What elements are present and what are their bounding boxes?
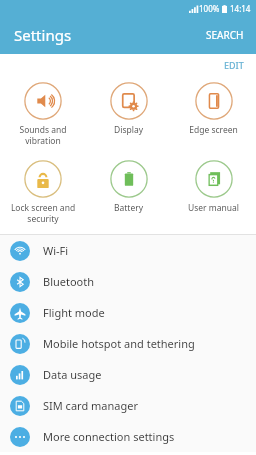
button[interactable]: Flight mode (0, 297, 256, 328)
staticText: Display (86, 124, 171, 136)
button[interactable]: Wi-Fi (0, 235, 256, 266)
staticText: 100% (199, 3, 220, 14)
staticText: Mobile hotspot and tethering (43, 336, 195, 351)
staticText: Settings (14, 25, 72, 45)
button[interactable]: Sounds and vibration (0, 80, 86, 148)
staticText: SEARCH (206, 28, 244, 42)
button[interactable]: Bluetooth (0, 266, 256, 297)
staticText: Edge screen (171, 124, 256, 136)
button[interactable]: SEARCH (194, 20, 256, 50)
staticText: More connection settings (43, 429, 175, 444)
staticText: Bluetooth (43, 274, 95, 289)
staticText: EDIT (224, 59, 244, 71)
button[interactable]: Mobile hotspot and tethering (0, 328, 256, 359)
button[interactable]: More connection settings (0, 421, 256, 452)
staticText: Lock screen and security (0, 202, 86, 224)
button[interactable]: Data usage (0, 359, 256, 390)
staticText: SIM card manager (43, 398, 138, 413)
button[interactable]: Display (86, 80, 171, 138)
button[interactable]: EDIT (212, 54, 256, 76)
button[interactable]: User manual (171, 158, 256, 216)
button[interactable]: SIM card manager (0, 390, 256, 421)
staticText: User manual (171, 202, 256, 214)
staticText: 14:14 (230, 3, 251, 14)
staticText: Data usage (43, 367, 102, 382)
staticText: Flight mode (43, 305, 105, 320)
staticText: Sounds and vibration (0, 124, 86, 146)
button[interactable]: Battery (86, 158, 171, 216)
button[interactable]: Edge screen (171, 80, 256, 138)
button[interactable]: Lock screen and security (0, 158, 86, 226)
staticText: Battery (86, 202, 171, 214)
staticText: Wi-Fi (43, 243, 69, 258)
